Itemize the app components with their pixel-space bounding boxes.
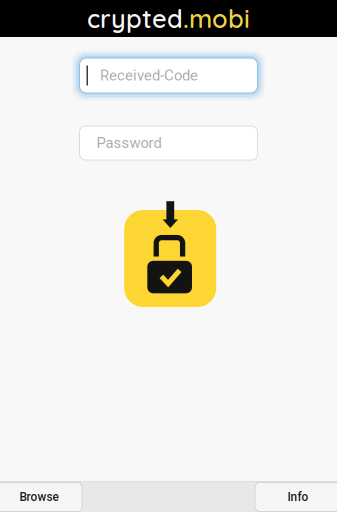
staticText: Info <box>287 490 308 504</box>
staticText: Browse <box>19 490 58 504</box>
staticText: crypted <box>87 3 183 34</box>
staticText: Password <box>96 134 161 152</box>
button[interactable]: Decrypt file <box>122 197 214 307</box>
staticText: Received-Code <box>100 67 198 84</box>
button[interactable]: Password <box>79 126 257 160</box>
button[interactable]: Received-Code <box>72 51 264 100</box>
staticText: . <box>183 3 189 34</box>
button[interactable]: Browse <box>0 482 86 511</box>
staticText: mobi <box>189 3 250 34</box>
button[interactable]: Info <box>251 482 337 511</box>
